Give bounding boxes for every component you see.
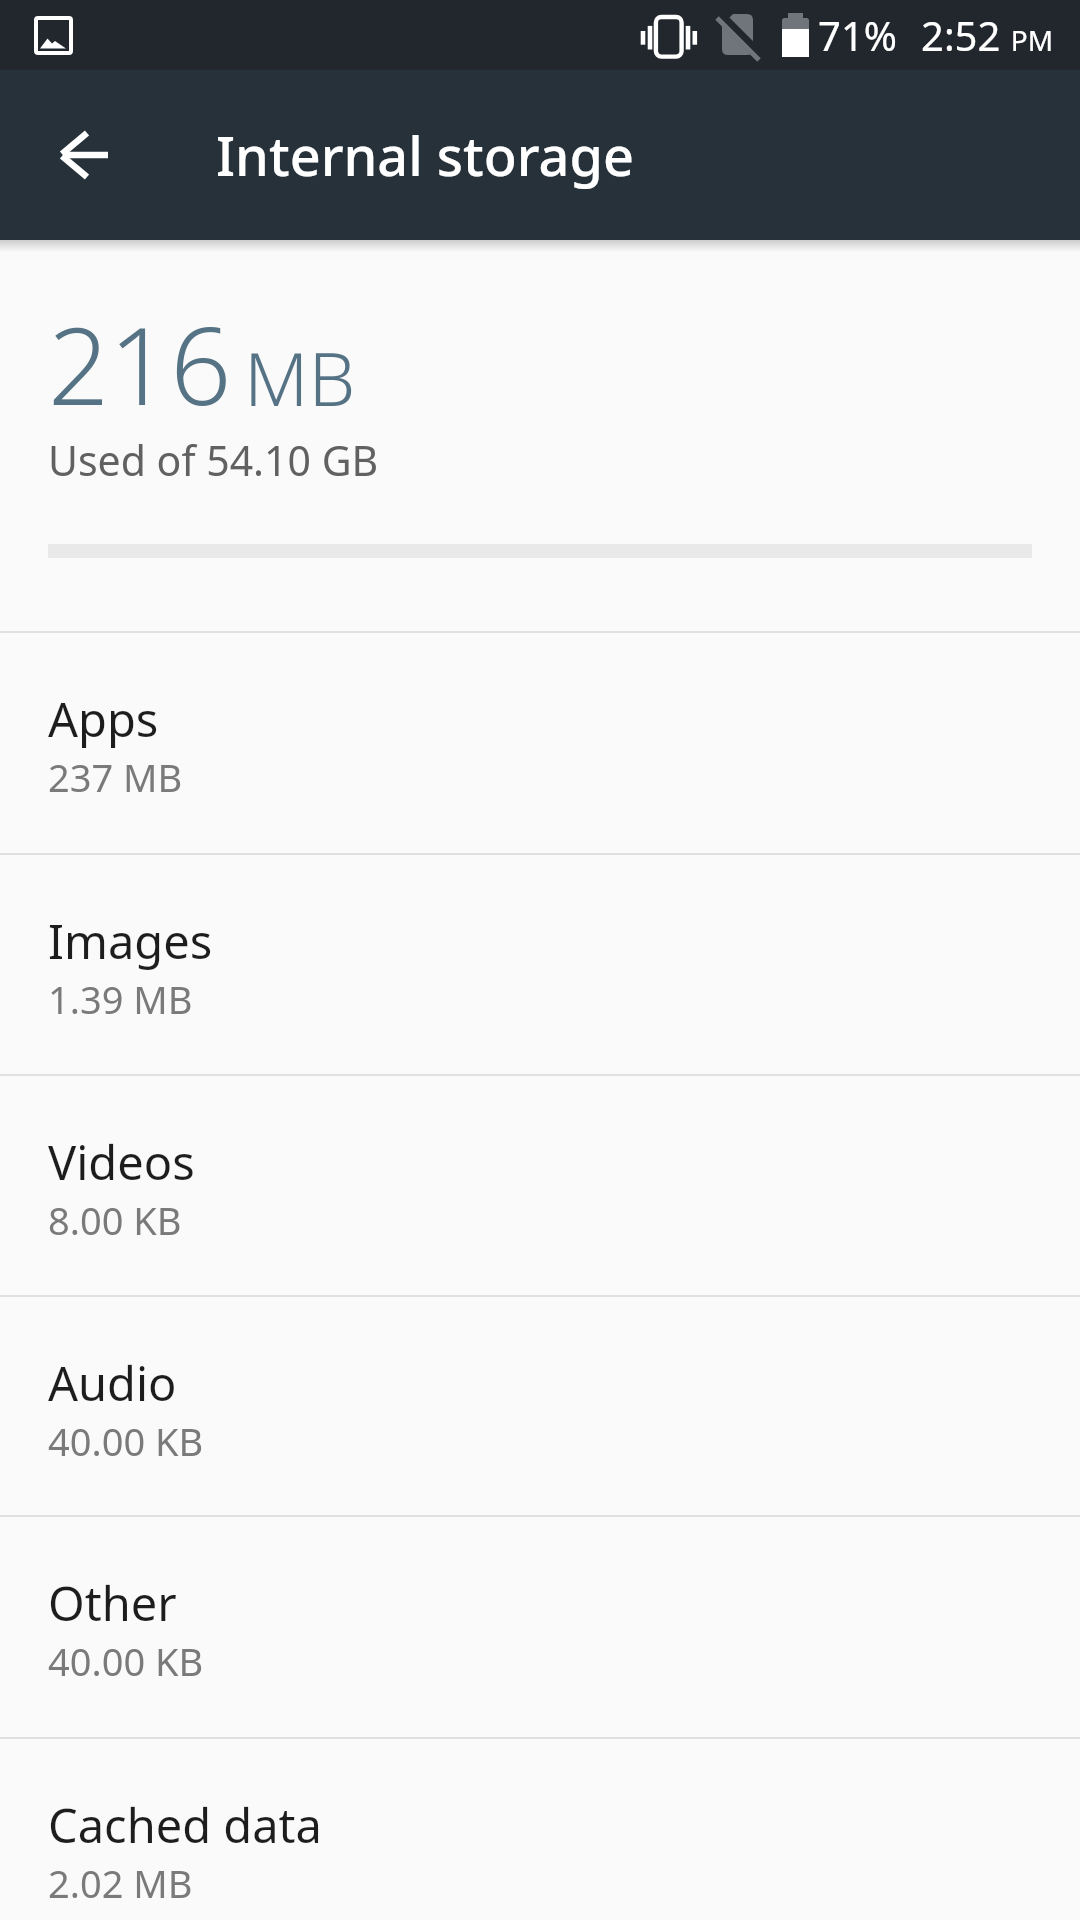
staticText: 40.00 KB <box>48 1635 204 1687</box>
staticText: Apps <box>48 687 159 751</box>
staticText: 237 MB <box>48 751 183 803</box>
staticText: Videos <box>48 1130 195 1194</box>
button[interactable]: Internal storage <box>0 70 1080 240</box>
staticText: 71% <box>818 8 897 62</box>
staticText: 1.39 MB <box>48 973 193 1025</box>
staticText: Audio <box>48 1351 177 1415</box>
staticText: 2:52 PM <box>921 8 1054 62</box>
button[interactable]: Images <box>0 855 1080 1074</box>
staticText: 2.02 MB <box>48 1857 193 1909</box>
staticText: Used of 54.10 GB <box>48 432 379 488</box>
button[interactable]: Videos <box>0 1076 1080 1295</box>
staticText: Cached data <box>48 1793 322 1857</box>
staticText: Internal storage <box>216 118 634 192</box>
staticText: 40.00 KB <box>48 1415 204 1467</box>
button[interactable]: Apps <box>0 633 1080 853</box>
button[interactable]: Audio <box>0 1297 1080 1515</box>
button[interactable]: Other <box>0 1517 1080 1737</box>
staticText: MB <box>244 327 356 428</box>
staticText: 216 <box>48 291 232 437</box>
staticText: Images <box>48 909 213 973</box>
staticText: Other <box>48 1571 177 1635</box>
staticText: 8.00 KB <box>48 1194 182 1246</box>
button[interactable]: Cached data <box>0 1739 1080 1920</box>
